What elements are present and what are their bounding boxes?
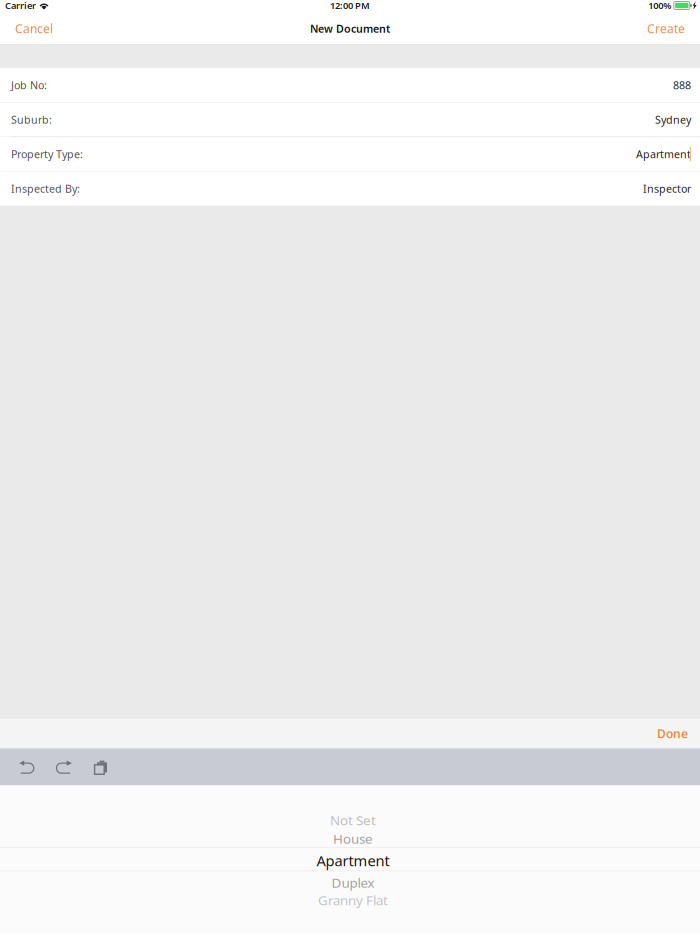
button[interactable]: Suburb:: [0, 102, 700, 136]
button[interactable]: Redo: [55, 761, 72, 774]
button[interactable]: Cancel: [0, 16, 66, 40]
staticText: Carrier: [5, 0, 36, 12]
staticText: Suburb:: [11, 112, 52, 127]
staticText: Cancel: [15, 20, 53, 36]
button[interactable]: Done: [641, 718, 700, 748]
staticText: New Document: [310, 21, 390, 36]
staticText: Granny Flat: [318, 891, 388, 909]
staticText: Duplex: [331, 874, 374, 891]
button[interactable]: Paste: [94, 760, 108, 775]
staticText: Apartment: [316, 851, 389, 870]
staticText: Done: [657, 725, 688, 741]
button[interactable]: Undo: [19, 761, 34, 774]
staticText: 100%: [648, 0, 671, 12]
staticText: Inspector: [643, 181, 691, 196]
button[interactable]: Job No:: [0, 68, 700, 102]
staticText: Create: [647, 20, 685, 36]
staticText: Not Set: [330, 811, 376, 829]
staticText: Apartment: [636, 147, 691, 161]
staticText: 12:00 PM: [330, 0, 370, 12]
button[interactable]: Create: [634, 16, 700, 40]
button[interactable]: Property Type:: [0, 137, 700, 171]
button[interactable]: Inspected By:: [0, 171, 700, 205]
staticText: 888: [673, 78, 691, 92]
staticText: Property Type:: [11, 147, 83, 161]
staticText: Inspected By:: [11, 181, 80, 196]
staticText: Sydney: [655, 112, 691, 127]
staticText: House: [333, 830, 373, 847]
staticText: Job No:: [11, 78, 47, 92]
